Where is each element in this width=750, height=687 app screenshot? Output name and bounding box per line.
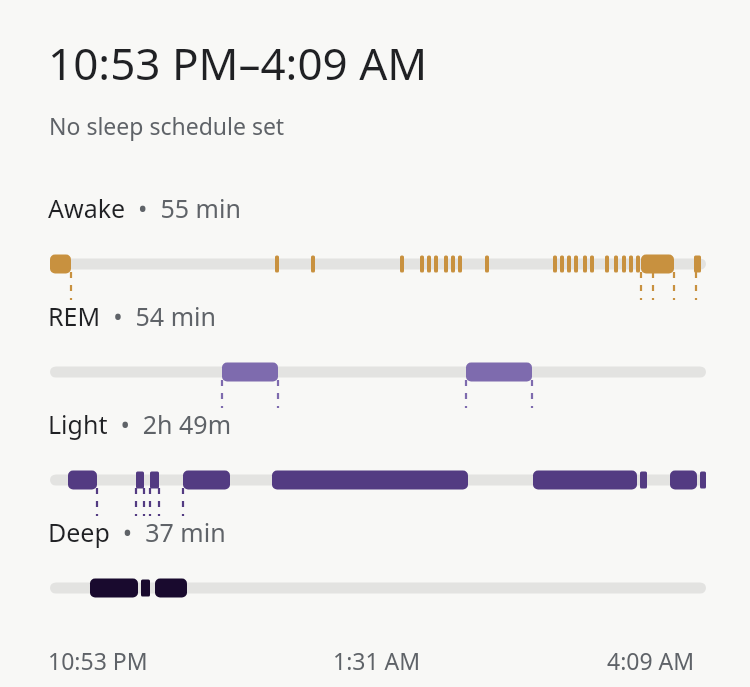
staticText: Deep • 37 min <box>48 515 226 549</box>
button[interactable]: Light 2h 49m <box>48 407 348 443</box>
staticText: 1:31 AM <box>333 645 421 676</box>
staticText: No sleep schedule set <box>49 110 285 141</box>
staticText: Light • 2h 49m <box>48 407 232 441</box>
staticText: REM • 54 min <box>48 299 216 333</box>
staticText: 10:53 PM–4:09 AM <box>48 33 428 93</box>
button[interactable]: REM 54 min <box>48 299 348 335</box>
staticText: Awake • 55 min <box>48 191 241 225</box>
button[interactable]: Deep 37 min <box>48 515 348 551</box>
staticText: 4:09 AM <box>607 645 695 676</box>
button[interactable]: Awake 55 min <box>48 191 348 227</box>
staticText: 10:53 PM <box>48 645 148 676</box>
